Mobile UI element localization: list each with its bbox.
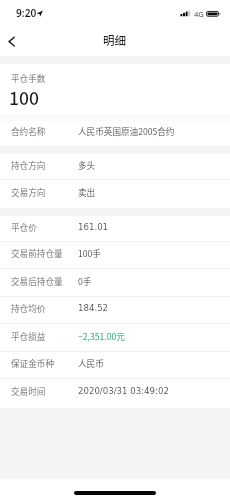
staticText: 交易方向 [11, 186, 46, 198]
staticText: 平仓价 [11, 221, 37, 233]
button[interactable]: 平仓损益 [0, 324, 230, 352]
button[interactable]: 保证金币种 [0, 352, 230, 379]
staticText: 保证金币种 [11, 357, 54, 369]
staticText: 平仓损益 [11, 330, 46, 342]
button[interactable]: 交易方向 [0, 180, 230, 208]
button[interactable]: 持仓方向 [0, 154, 230, 180]
button[interactable]: Back [0, 24, 24, 54]
staticText: 人民币 [78, 357, 104, 369]
staticText: 2020/03/31 03:49:02 [78, 386, 169, 396]
staticText: 明细 [103, 32, 127, 49]
staticText: 4G [194, 9, 204, 19]
staticText: 人民币英国原油2005合约 [78, 125, 175, 137]
button[interactable]: 交易时间 [0, 379, 230, 408]
staticText: 161.01 [78, 222, 109, 232]
staticText: 交易前持仓量 [11, 247, 63, 259]
staticText: −2,351.00元 [78, 330, 125, 342]
staticText: 平仓手数 [11, 72, 46, 84]
staticText: 合约名称 [11, 125, 46, 137]
staticText: 持仓均价 [11, 302, 46, 314]
button[interactable]: 平仓价 [0, 216, 230, 242]
staticText: 多头 [78, 159, 96, 171]
staticText: 持仓方向 [11, 159, 46, 171]
staticText: 交易后持仓量 [11, 275, 63, 287]
staticText: 0手 [78, 275, 92, 287]
button[interactable]: 持仓均价 [0, 297, 230, 324]
button[interactable]: 交易后持仓量 [0, 269, 230, 297]
staticText: 100手 [78, 247, 101, 259]
staticText: 卖出 [78, 186, 96, 198]
staticText: 9:20 [16, 6, 37, 20]
button[interactable]: 交易前持仓量 [0, 242, 230, 269]
staticText: 184.52 [78, 303, 109, 313]
staticText: 100 [9, 85, 39, 110]
staticText: 交易时间 [11, 385, 46, 397]
button[interactable]: 合约名称 [0, 121, 230, 146]
